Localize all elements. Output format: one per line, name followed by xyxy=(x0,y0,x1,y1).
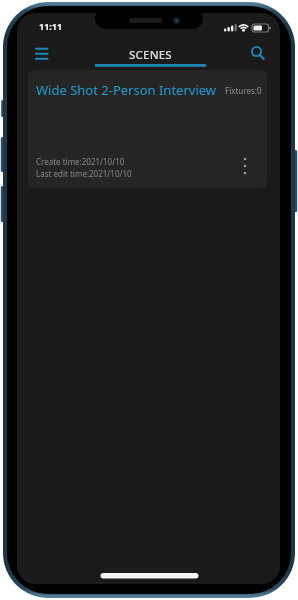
button[interactable] xyxy=(246,43,270,65)
button[interactable]: Wide Shot 2-Person Interview xyxy=(28,70,267,188)
staticText: Last edit time:2021/10/10 xyxy=(36,168,132,179)
button[interactable] xyxy=(235,154,255,180)
button[interactable] xyxy=(29,43,55,65)
staticText: Create time:2021/10/10 xyxy=(36,156,125,167)
staticText: 11:11 xyxy=(39,20,63,32)
staticText: Fixtures:0 xyxy=(225,85,262,96)
button[interactable]: SCENES xyxy=(95,44,206,65)
staticText: Wide Shot 2-Person Interview xyxy=(36,81,217,99)
staticText: SCENES xyxy=(129,47,172,63)
